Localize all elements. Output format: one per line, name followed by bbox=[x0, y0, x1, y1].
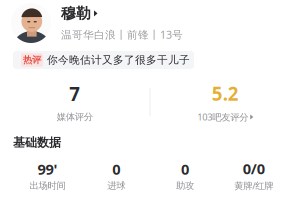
staticText: 穆勒 bbox=[61, 4, 91, 22]
staticText: 黄牌/红牌 bbox=[234, 179, 273, 192]
staticText: 助攻 bbox=[176, 180, 194, 191]
staticText: 5.2 bbox=[212, 81, 239, 106]
staticText: 温哥华白浪丨前锋丨13号 bbox=[61, 27, 183, 42]
staticText: 热评 bbox=[23, 54, 41, 66]
staticText: 进球 bbox=[107, 180, 125, 191]
button[interactable]: 穆勒 bbox=[0, 0, 300, 43]
staticText: 基础数据 bbox=[13, 135, 61, 150]
button[interactable]: 热评 bbox=[0, 51, 194, 69]
staticText: 99' bbox=[37, 159, 57, 179]
staticText: 媒体评分 bbox=[57, 111, 93, 123]
staticText: 7 bbox=[69, 81, 80, 106]
button[interactable]: 5.2 bbox=[150, 81, 300, 123]
staticText: 0 bbox=[112, 159, 120, 179]
staticText: 0/0 bbox=[243, 159, 265, 178]
staticText: 你今晚估计又多了很多干儿子 bbox=[47, 53, 190, 66]
staticText: 出场时间 bbox=[29, 180, 65, 191]
staticText: 103吧友评分 bbox=[197, 111, 248, 123]
staticText: 0 bbox=[181, 159, 189, 179]
